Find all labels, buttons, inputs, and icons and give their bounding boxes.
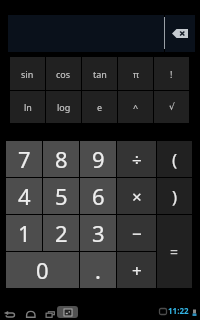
staticText: 7 xyxy=(18,144,31,174)
staticText: × xyxy=(132,185,142,208)
button[interactable]: 8 xyxy=(43,141,79,177)
staticText: tan xyxy=(93,68,107,80)
button[interactable]: ( xyxy=(157,141,192,177)
button[interactable]: √ xyxy=(154,91,189,123)
button[interactable]: 1 xyxy=(6,215,42,251)
staticText: 5 xyxy=(55,181,68,211)
staticText: 8 xyxy=(55,144,68,174)
button[interactable] xyxy=(165,15,195,52)
button[interactable]: ÷ xyxy=(117,141,156,177)
button[interactable]: + xyxy=(117,252,156,288)
staticText: cos xyxy=(56,68,71,80)
button[interactable]: π xyxy=(118,57,153,90)
button[interactable]: sin xyxy=(10,57,45,90)
button[interactable]: 4 xyxy=(6,178,42,214)
staticText: 6 xyxy=(92,181,105,211)
staticText: ^ xyxy=(133,101,139,113)
button[interactable]: 0 xyxy=(6,252,79,288)
button[interactable]: ! xyxy=(154,57,189,90)
staticText: = xyxy=(170,242,179,261)
button[interactable]: ^ xyxy=(118,91,153,123)
staticText: ( xyxy=(172,148,178,171)
staticText: 2 xyxy=(55,218,68,248)
button[interactable] xyxy=(2,304,18,320)
button[interactable]: ln xyxy=(10,91,45,123)
staticText: ln xyxy=(24,101,32,113)
staticText: 3 xyxy=(92,218,105,248)
button[interactable]: × xyxy=(117,178,156,214)
button[interactable] xyxy=(57,306,78,318)
staticText: + xyxy=(132,259,142,282)
staticText: 9 xyxy=(92,144,105,174)
staticText: ) xyxy=(172,185,178,208)
staticText: √ xyxy=(169,102,175,112)
staticText: e xyxy=(97,101,103,113)
staticText: 1 xyxy=(18,218,31,248)
button[interactable]: cos xyxy=(46,57,81,90)
button[interactable]: 5 xyxy=(43,178,79,214)
button[interactable]: 11:22 xyxy=(168,304,189,316)
button[interactable]: − xyxy=(117,215,156,251)
staticText: . xyxy=(95,255,101,285)
staticText: 11:22 xyxy=(168,305,189,316)
button[interactable] xyxy=(24,304,42,320)
button[interactable]: . xyxy=(80,252,116,288)
staticText: 0 xyxy=(36,255,49,285)
button[interactable]: 7 xyxy=(6,141,42,177)
button[interactable]: 2 xyxy=(43,215,79,251)
button[interactable]: 3 xyxy=(80,215,116,251)
button[interactable]: ) xyxy=(157,178,192,214)
button[interactable]: 9 xyxy=(80,141,116,177)
staticText: sin xyxy=(21,68,34,80)
staticText: 4 xyxy=(18,181,31,211)
button[interactable]: e xyxy=(82,91,117,123)
button[interactable]: tan xyxy=(82,57,117,90)
button[interactable]: 6 xyxy=(80,178,116,214)
staticText: ! xyxy=(170,68,173,80)
button[interactable]: = xyxy=(157,215,192,288)
button[interactable]: log xyxy=(46,91,81,123)
button[interactable] xyxy=(44,304,60,320)
staticText: ÷ xyxy=(132,148,142,171)
staticText: log xyxy=(57,101,71,113)
staticText: − xyxy=(132,222,142,245)
staticText: π xyxy=(133,68,139,80)
